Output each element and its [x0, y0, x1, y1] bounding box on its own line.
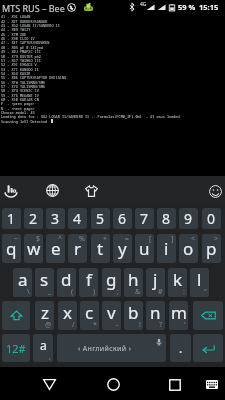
staticText: >	[214, 234, 219, 244]
staticText: 56 - XFW TALISMAN/SM6	[1, 80, 46, 85]
staticText: P - <prev page>	[1, 101, 35, 106]
staticText: ‹ Английский ›	[78, 344, 132, 354]
button[interactable]: 6	[113, 208, 132, 229]
staticText: 2	[29, 209, 38, 228]
button[interactable]: h	[124, 268, 143, 297]
button[interactable]: x	[58, 301, 77, 330]
button[interactable]: ‹ Английский ›	[57, 334, 166, 362]
staticText: u	[139, 237, 150, 260]
staticText: $	[36, 234, 41, 244]
button[interactable]: o	[179, 234, 198, 263]
staticText: ]	[171, 234, 174, 244]
staticText: ^	[58, 234, 63, 244]
button[interactable]: b	[124, 301, 143, 330]
staticText: 45 - X7M IDE	[1, 32, 27, 37]
button[interactable]: w	[24, 234, 43, 263]
staticText: 54 - X6U KAXIR	[1, 71, 31, 76]
button[interactable]: Enter	[193, 334, 223, 362]
staticText: 8	[162, 209, 171, 228]
button[interactable]: p	[202, 234, 221, 263]
staticText: 55 - X06 CAPTUR/KAPTUR DN/IAING	[1, 75, 67, 80]
staticText: 5	[96, 209, 105, 228]
staticText: 49 - X0J FMAFXC III	[1, 49, 41, 54]
staticText: j	[153, 268, 158, 291]
button[interactable]: y	[113, 234, 132, 263]
button[interactable]: f	[79, 268, 98, 297]
button[interactable]: 7	[135, 208, 154, 229]
button[interactable]: m	[169, 301, 188, 330]
button[interactable]: 0	[202, 208, 221, 229]
staticText: f	[86, 268, 92, 291]
button[interactable]: 5	[91, 208, 110, 229]
button[interactable]: q	[2, 234, 21, 263]
button[interactable]: a	[33, 334, 53, 362]
button[interactable]: Languages	[38, 176, 66, 205]
staticText: 52 - X9C ESKACE V	[1, 62, 37, 67]
button[interactable]: n	[146, 301, 165, 330]
staticText: #	[158, 287, 163, 297]
staticText: [	[149, 234, 152, 244]
staticText: g	[106, 268, 117, 291]
staticText: &	[135, 287, 141, 297]
button[interactable]: 2	[24, 208, 43, 229]
staticText: h	[128, 268, 139, 291]
button[interactable]: k	[168, 268, 187, 297]
staticText: @	[45, 320, 52, 330]
staticText: w	[27, 237, 41, 260]
staticText: 4G	[140, 1, 147, 8]
button[interactable]: 4	[68, 208, 87, 229]
button[interactable]: Emoji	[201, 176, 225, 205]
staticText: ?	[159, 320, 163, 330]
staticText: Choose model: 43	[1, 110, 35, 115]
button[interactable]: j	[146, 268, 165, 297]
button[interactable]: .	[170, 334, 191, 362]
staticText: t	[97, 237, 104, 260]
button[interactable]: Shift	[2, 301, 30, 330]
staticText: 43 - XG2 LOGAN II/SANDERO II	[1, 23, 60, 28]
staticText: 60 - X50 KADJAR CN	[1, 97, 39, 102]
staticText: 42 - XET DOKKER/KANGOO	[1, 19, 48, 24]
staticText: q	[6, 237, 17, 260]
button[interactable]: Hide keyboard	[196, 367, 225, 400]
button[interactable]: Theme	[78, 176, 106, 205]
staticText: z	[41, 301, 49, 324]
staticText: l	[197, 268, 202, 291]
staticText: 50 - X79 DUSTER ph2	[1, 54, 41, 59]
staticText: p	[206, 237, 217, 260]
staticText: +	[103, 234, 108, 244]
button[interactable]: 12#	[2, 334, 30, 362]
button[interactable]: s	[35, 268, 54, 297]
staticText: 44 - X09 TWIZY	[1, 27, 31, 32]
button[interactable]: 9	[179, 208, 198, 229]
button[interactable]: 3	[46, 208, 65, 229]
button[interactable]: 8	[157, 208, 176, 229]
button[interactable]: i	[157, 234, 176, 263]
button[interactable]: Recents	[159, 367, 191, 400]
staticText: *	[93, 320, 97, 330]
button[interactable]: Backspace	[193, 301, 223, 330]
button[interactable]: u	[135, 234, 154, 263]
staticText: ~	[14, 234, 19, 244]
button[interactable]: 1	[2, 208, 21, 229]
button[interactable]: d	[57, 268, 76, 297]
button[interactable]: a	[13, 268, 32, 297]
button[interactable]: Clipboard	[0, 176, 25, 205]
button[interactable]: t	[91, 234, 110, 263]
button[interactable]: c	[80, 301, 99, 330]
button[interactable]: Home	[97, 367, 129, 400]
staticText: %	[79, 234, 85, 244]
staticText: (	[71, 287, 74, 297]
staticText: 0	[207, 209, 216, 228]
button[interactable]: l	[190, 268, 209, 297]
staticText: Loading data for : XG2 LOGAN II/SANDERO …	[1, 114, 180, 119]
button[interactable]: e	[46, 234, 65, 263]
staticText: x	[63, 301, 72, 324]
button[interactable]: z	[35, 301, 54, 330]
button[interactable]: r	[68, 234, 87, 263]
button[interactable]: Back	[33, 367, 65, 400]
button[interactable]: g	[102, 268, 121, 297]
staticText: "	[204, 287, 207, 297]
button[interactable]: v	[102, 301, 121, 330]
staticText: v	[107, 301, 116, 324]
staticText: MTS RUS – Bee	[2, 2, 65, 14]
